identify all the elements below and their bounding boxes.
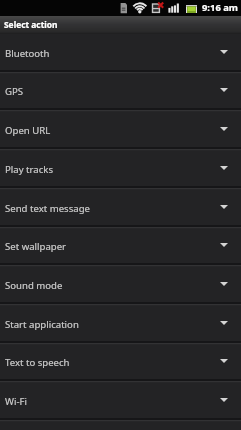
- staticText: Set wallpaper: [5, 240, 67, 253]
- button[interactable]: Start application: [0, 305, 241, 344]
- staticText: Wi-Fi: [5, 395, 27, 408]
- button[interactable]: Play tracks: [0, 150, 241, 189]
- staticText: GPS: [5, 85, 24, 98]
- button[interactable]: Wi-Fi: [0, 382, 241, 421]
- button[interactable]: Bluetooth: [0, 34, 241, 73]
- button[interactable]: GPS: [0, 72, 241, 111]
- staticText: 9:16 am: [202, 1, 238, 14]
- button[interactable]: Sound mode: [0, 266, 241, 305]
- staticText: Send text message: [5, 202, 90, 215]
- button[interactable]: Open URL: [0, 111, 241, 150]
- button[interactable]: Send text message: [0, 189, 241, 228]
- staticText: Bluetooth: [5, 47, 50, 60]
- button[interactable]: Text to speech: [0, 343, 241, 382]
- staticText: Text to speech: [5, 356, 70, 369]
- staticText: Sound mode: [5, 279, 63, 292]
- button[interactable]: Set wallpaper: [0, 227, 241, 266]
- staticText: Start application: [5, 318, 79, 331]
- staticText: Select action: [4, 19, 58, 30]
- staticText: Open URL: [5, 124, 51, 137]
- staticText: Play tracks: [5, 163, 53, 176]
